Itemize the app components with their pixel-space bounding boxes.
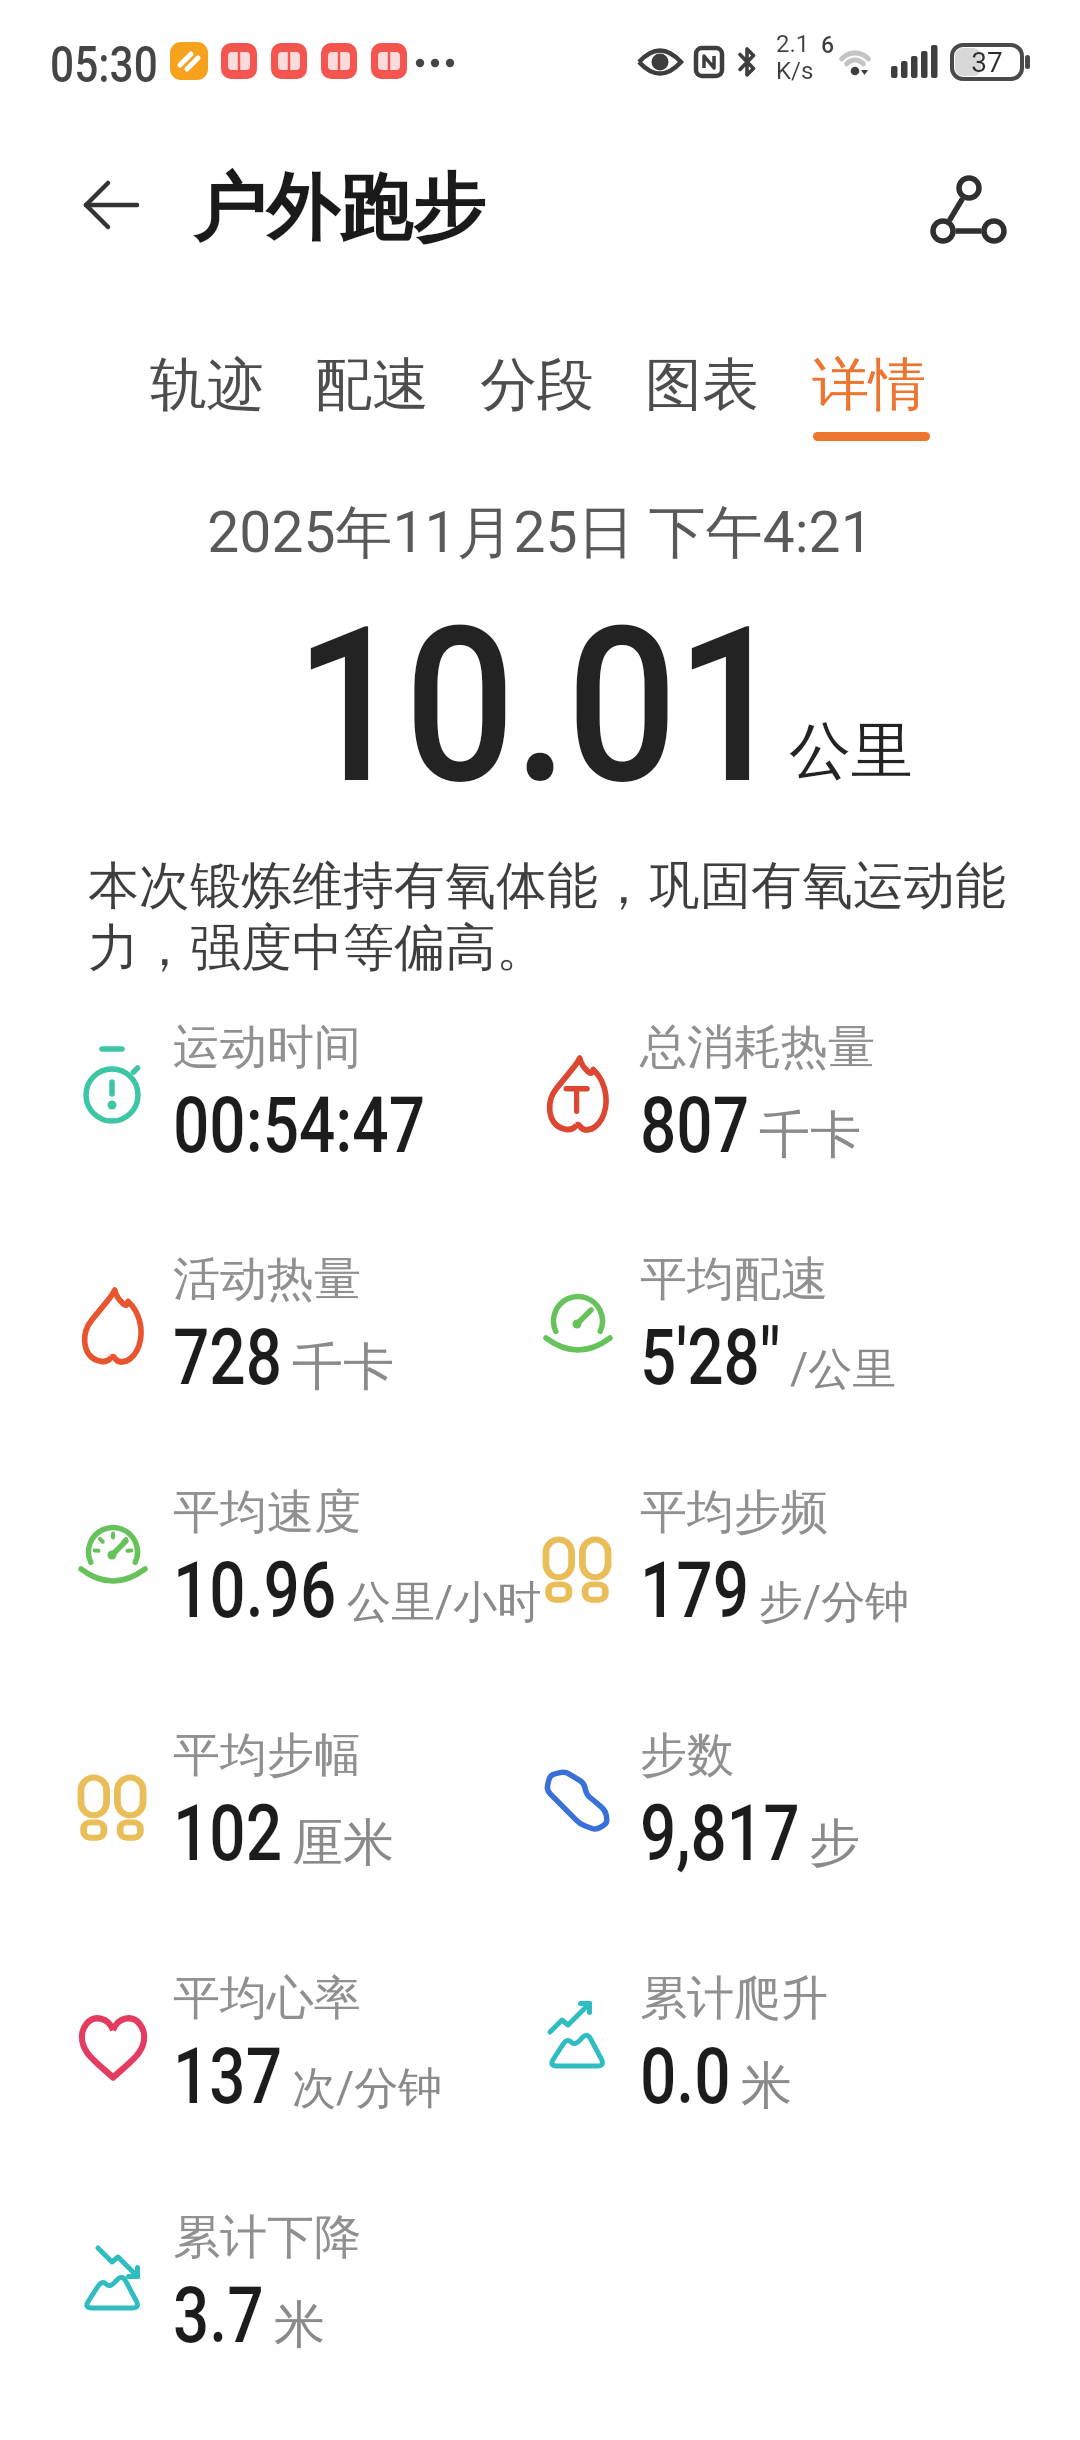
staticText: 步/分钟 xyxy=(759,1575,910,1630)
staticText: 平均步幅 xyxy=(173,1726,361,1785)
button[interactable] xyxy=(70,165,150,245)
staticText: 公里 xyxy=(789,712,913,790)
staticText: 累计下降 xyxy=(173,2208,361,2267)
staticText: 807 xyxy=(640,1080,749,1171)
staticText: 次/分钟 xyxy=(292,2061,443,2116)
staticText: 6 xyxy=(821,32,835,59)
staticText: 00:54:47 xyxy=(173,1080,426,1171)
staticText: 平均步频 xyxy=(640,1483,828,1542)
button[interactable]: 轨迹 xyxy=(150,349,264,421)
staticText: 厘米 xyxy=(292,1811,394,1875)
staticText: 千卡 xyxy=(292,1335,394,1399)
staticText: 千卡 xyxy=(759,1103,861,1167)
staticText: 公里/小时 xyxy=(347,1575,542,1630)
staticText: 9,817 xyxy=(640,1788,800,1879)
staticText: 137 xyxy=(173,2031,282,2122)
button[interactable]: 配速 xyxy=(315,349,429,421)
staticText: 运动时间 xyxy=(173,1018,361,1077)
staticText: 户外跑步 xyxy=(193,163,485,255)
staticText: 37 xyxy=(950,46,1024,79)
staticText: 05:30 xyxy=(50,36,158,95)
staticText: 总消耗热量 xyxy=(640,1018,875,1077)
staticText: 3.7 xyxy=(173,2270,264,2361)
staticText: 10.01 xyxy=(49,581,1031,833)
staticText: 米 xyxy=(741,2054,792,2118)
staticText: 活动热量 xyxy=(173,1250,361,1309)
staticText: 102 xyxy=(173,1788,282,1879)
staticText: 平均配速 xyxy=(640,1250,828,1309)
staticText: 步数 xyxy=(640,1726,734,1785)
staticText: 10.96 xyxy=(173,1545,337,1636)
staticText: 5'28" xyxy=(640,1312,781,1403)
staticText: 平均速度 xyxy=(173,1483,361,1542)
staticText: 本次锻炼维持有氧体能，巩固有氧运动能力，强度中等偏高。 xyxy=(88,854,1008,980)
staticText: 728 xyxy=(173,1312,282,1403)
staticText: 179 xyxy=(640,1545,749,1636)
button[interactable]: 图表 xyxy=(645,349,759,421)
staticText: 平均心率 xyxy=(173,1969,361,2028)
staticText: /公里 xyxy=(790,1342,897,1397)
staticText: 步 xyxy=(809,1811,860,1875)
button[interactable]: 分段 xyxy=(480,349,594,421)
button[interactable]: 详情 xyxy=(812,349,926,421)
staticText: 米 xyxy=(274,2293,325,2357)
button[interactable] xyxy=(915,160,1011,256)
staticText: 2.1 K/s xyxy=(776,30,814,85)
staticText: 2025年11月25日 下午4:21 xyxy=(0,497,1080,569)
staticText: 0.0 xyxy=(640,2031,731,2122)
staticText: 累计爬升 xyxy=(640,1969,828,2028)
